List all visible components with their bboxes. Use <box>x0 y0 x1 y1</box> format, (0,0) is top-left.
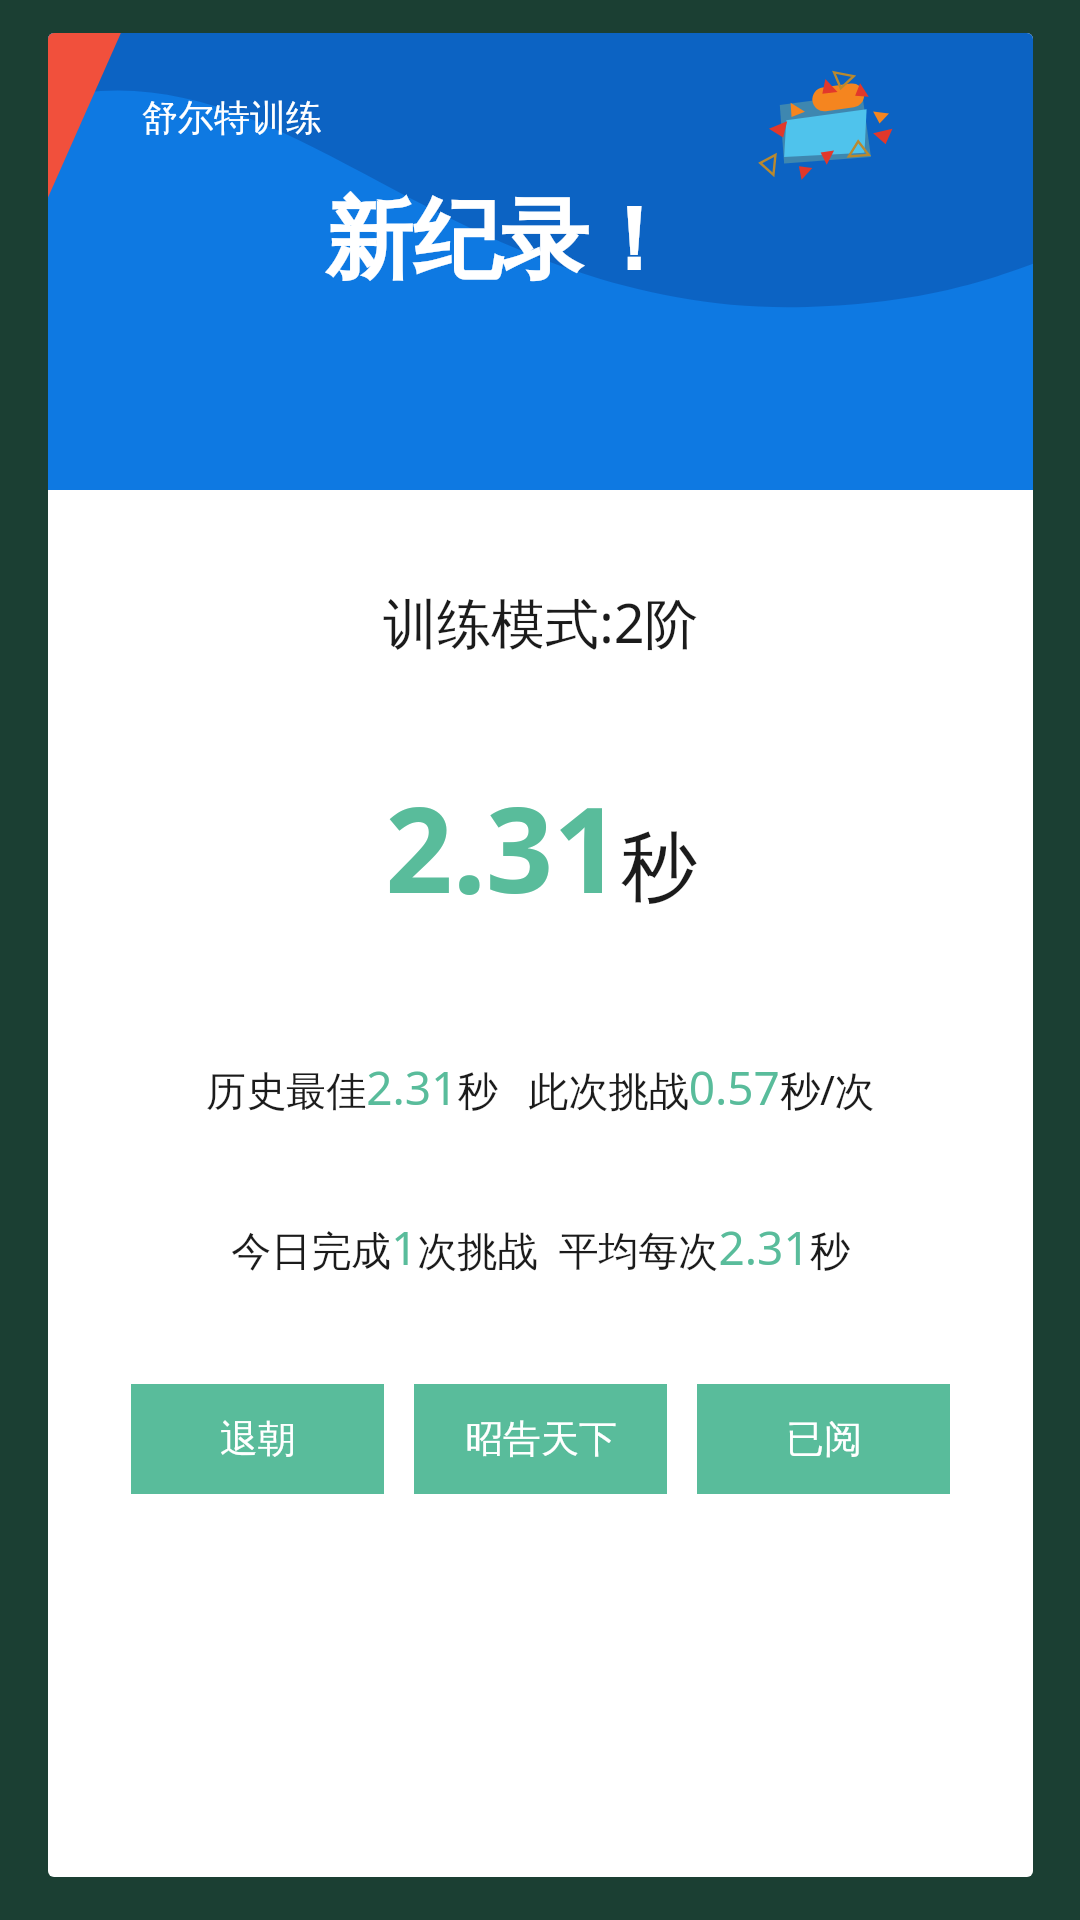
staticText: 训练模式:2阶 <box>383 585 699 659</box>
staticText: 昭告天下 <box>465 1415 617 1463</box>
staticText: 舒尔特训练 <box>142 95 322 140</box>
staticText: 2.31秒 <box>385 767 697 928</box>
button[interactable]: 退朝 <box>131 1384 384 1494</box>
staticText: 退朝 <box>220 1415 296 1463</box>
button[interactable]: 昭告天下 <box>414 1384 667 1494</box>
button[interactable]: 已阅 <box>697 1384 950 1494</box>
staticText: 历史最佳2.31秒 此次挑战0.57秒/次 <box>206 1056 875 1119</box>
staticText: 已阅 <box>786 1415 862 1463</box>
staticText: 今日完成1次挑战 平均每次2.31秒 <box>231 1216 850 1279</box>
staticText: 新纪录！ <box>325 185 677 296</box>
